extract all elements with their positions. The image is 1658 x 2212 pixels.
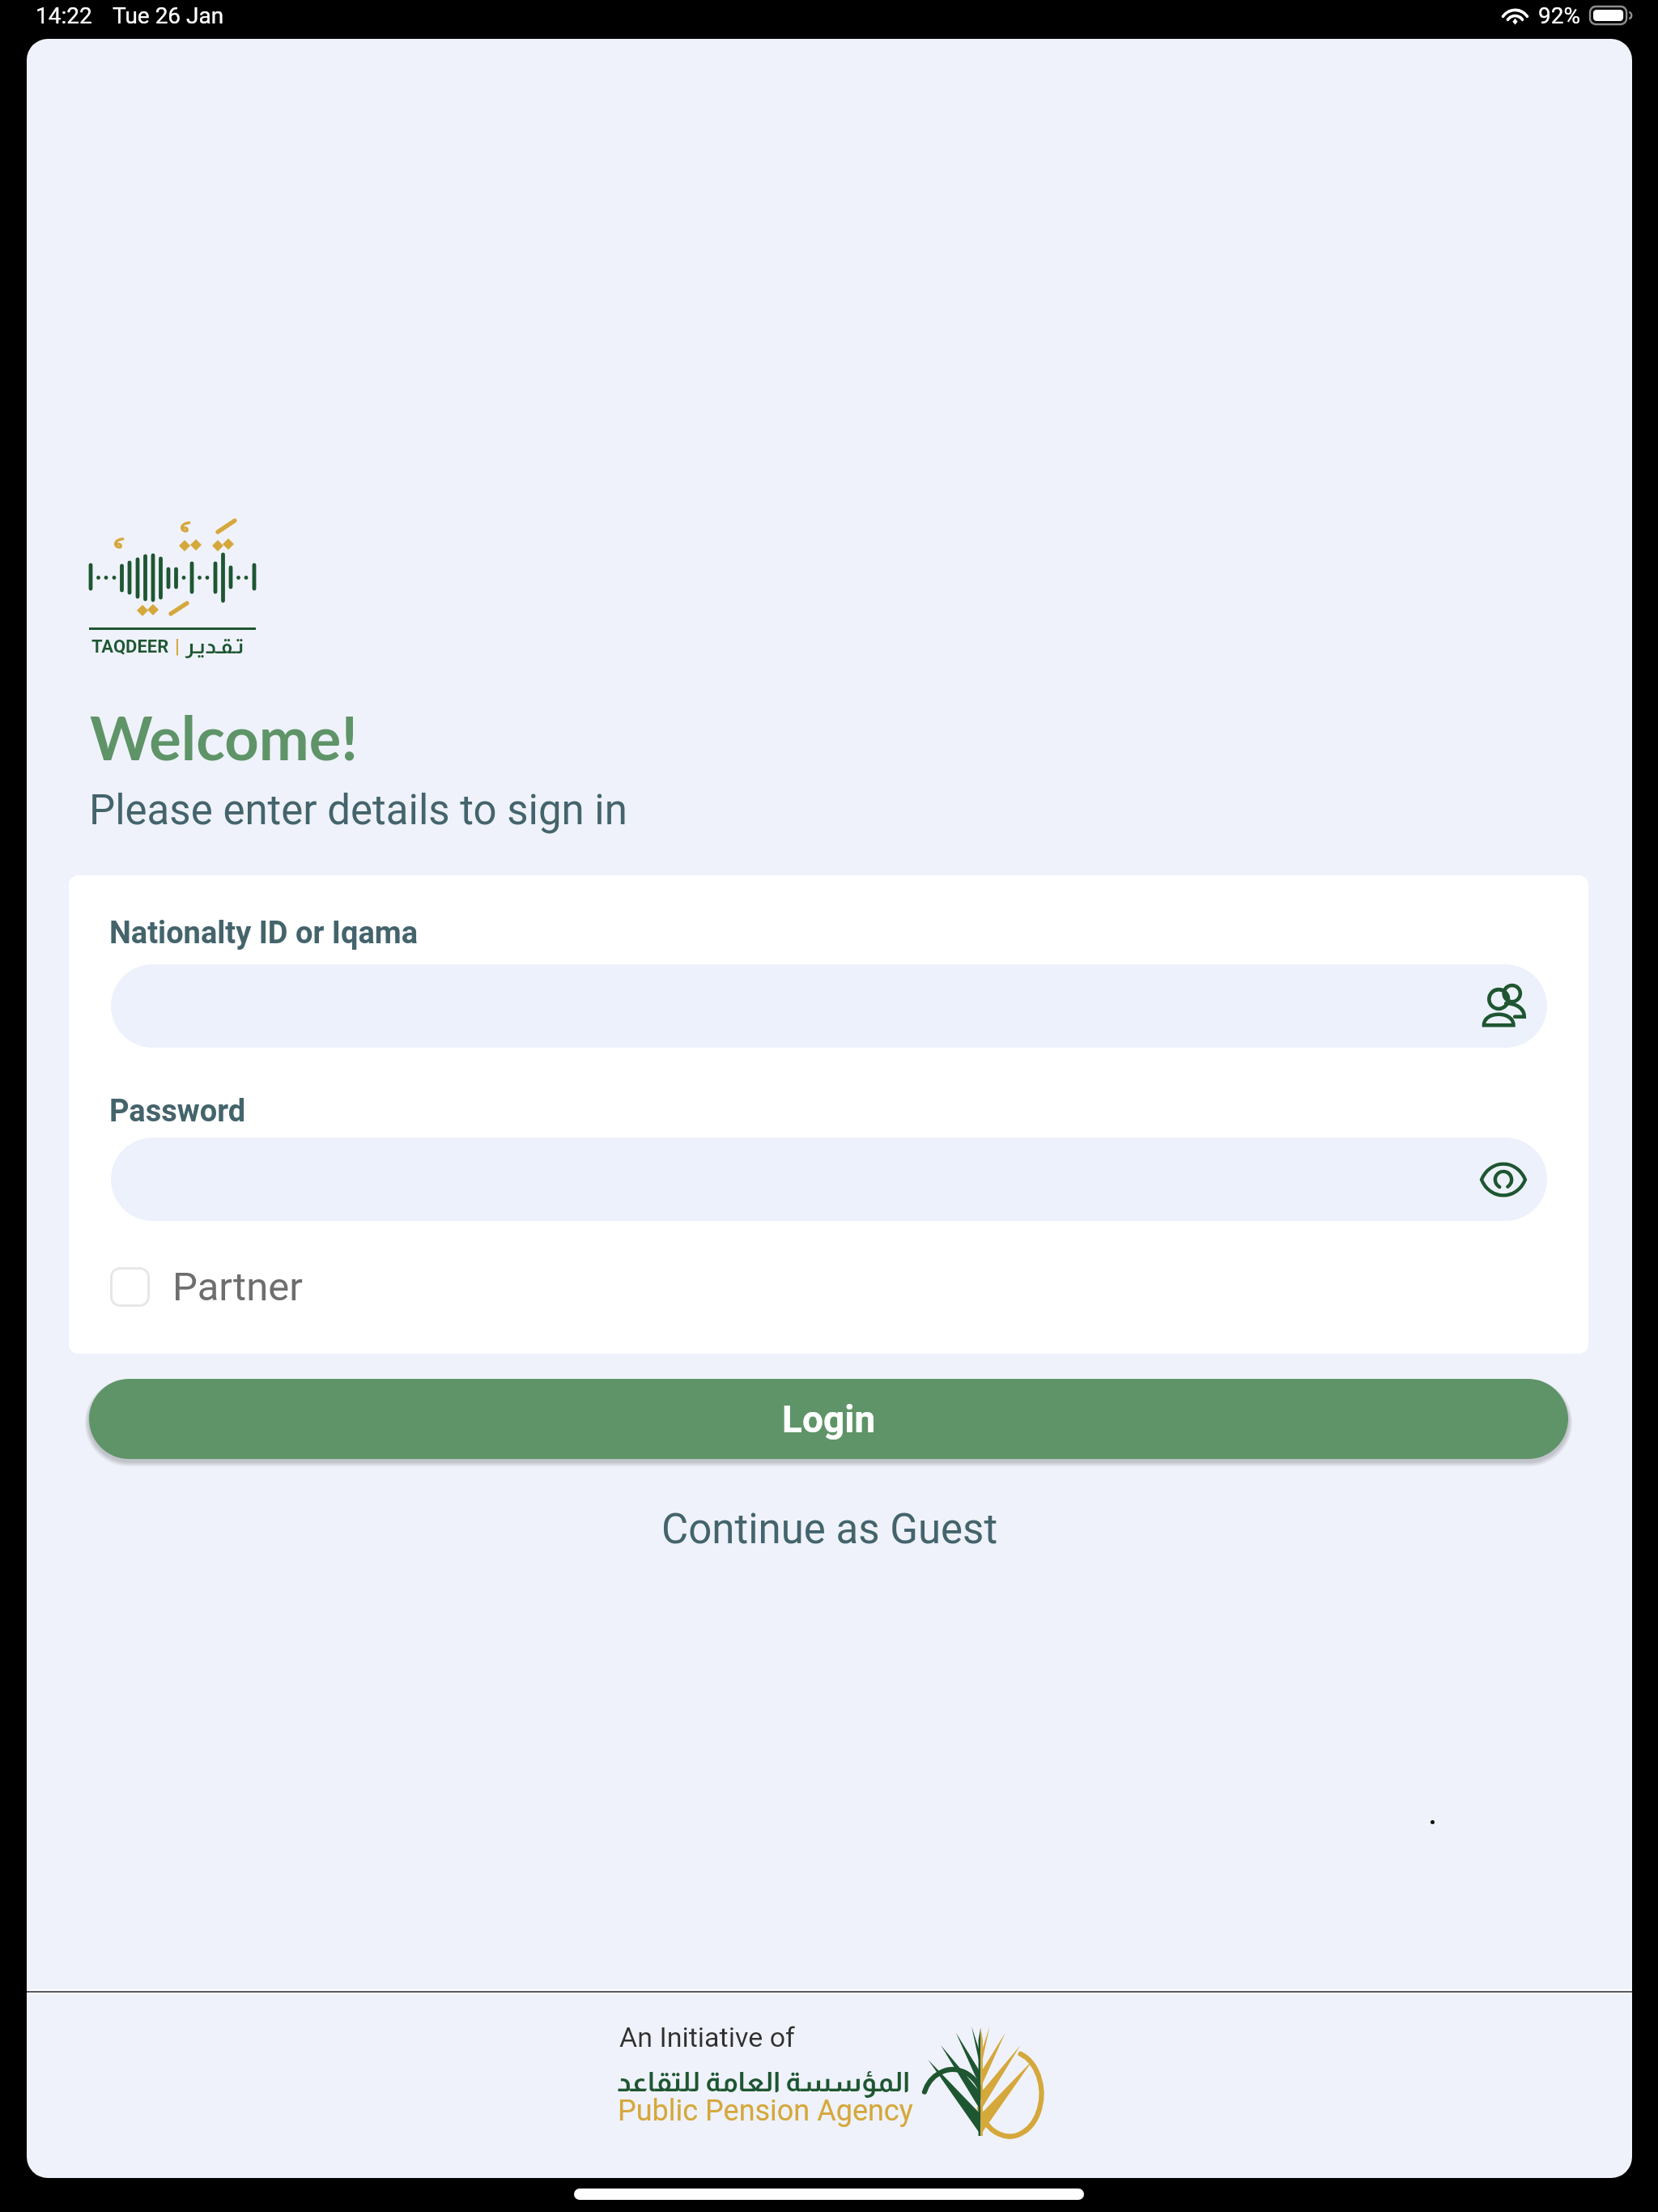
staticText: Please enter details to sign in: [89, 786, 627, 835]
staticText: An Initiative of: [619, 2021, 795, 2053]
staticText: |: [175, 636, 180, 657]
button[interactable]: Partner: [110, 1264, 303, 1310]
staticText: Partner: [172, 1264, 303, 1310]
button[interactable]: Show password: [111, 1138, 1547, 1221]
button[interactable]: Choose user: [111, 964, 1547, 1048]
staticText: TAQDEER: [91, 636, 169, 657]
staticText: 92%: [1538, 2, 1580, 29]
staticText: Welcome!: [90, 701, 358, 773]
staticText: 14:22: [36, 2, 92, 29]
staticText: المؤسسة العامة للتقاعد: [617, 2066, 911, 2097]
button[interactable]: Login: [89, 1379, 1568, 1459]
other: Show password: [1480, 1156, 1527, 1203]
other: Choose user: [1480, 983, 1527, 1030]
staticText: Nationalty ID or Iqama: [109, 915, 419, 951]
staticText: Password: [109, 1093, 246, 1129]
staticText: Login: [782, 1397, 876, 1441]
staticText: Tue 26 Jan: [113, 2, 224, 29]
button[interactable]: Continue as Guest: [642, 1495, 1018, 1563]
staticText: تـقـديـر: [185, 634, 244, 657]
staticText: Public Pension Agency: [618, 2094, 913, 2128]
